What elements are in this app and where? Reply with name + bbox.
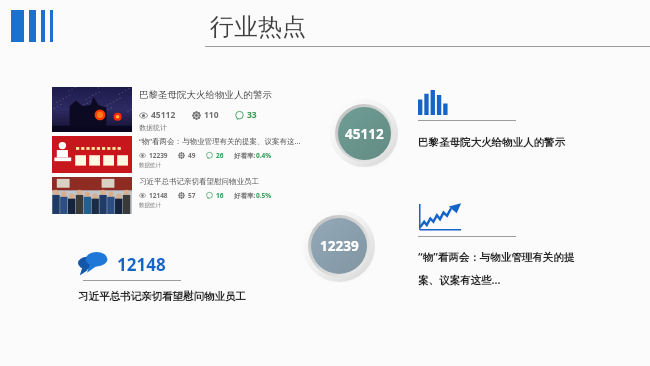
staticText: 0.5% [256,191,272,200]
staticText: 好看率: [234,191,256,200]
staticText: 习近平总书记亲切看望慰问物业员工 [139,177,259,186]
staticText: 110 [204,109,219,121]
staticText: 49 [188,151,196,160]
staticText: 巴黎圣母院大火给物业人的警示 [418,136,565,149]
staticText: “物”看两会：与物业管理有关的提 [418,250,575,264]
button[interactable]: 45112 [330,99,398,167]
staticText: 45112 [151,109,176,121]
staticText: 巴黎圣母院大火给物业人的警示 [139,89,272,101]
staticText: 习近平总书记亲切看望慰问物业员工 [78,290,246,303]
staticText: 数据统计 [139,162,161,169]
button[interactable]: Bar chart [418,90,630,149]
staticText: 0.4% [256,151,272,160]
button[interactable]: Logo [11,10,53,42]
staticText: 案、议案有这些... [418,273,501,287]
staticText: 16 [216,191,224,200]
staticText: 57 [188,191,196,200]
staticText: 12239 [320,237,359,255]
staticText: “物”看两会：与物业管理有关的提案、议案有这… [139,136,301,146]
staticText: 26 [216,151,224,160]
button[interactable]: Trend chart [418,202,634,287]
button[interactable]: 习近平总书记亲切看望慰问物业员工 [52,177,302,214]
staticText: 好看率: [234,151,256,160]
other: Bar chart [418,90,448,115]
button[interactable]: Comments [78,252,313,303]
button[interactable]: “物”看两会：与物业管理有关的提案、议案有这… [52,136,302,173]
other: Comments [78,252,108,276]
staticText: 行业热点 [210,12,306,42]
button[interactable]: 巴黎圣母院大火给物业人的警示 [52,87,302,132]
other: Trend chart [418,202,462,235]
staticText: 数据统计 [139,202,161,209]
staticText: 12148 [149,191,168,200]
staticText: 12148 [117,253,166,276]
staticText: 33 [247,109,257,121]
button[interactable]: 12239 [303,210,375,282]
staticText: 45112 [345,125,384,143]
staticText: 12239 [149,151,168,160]
staticText: 数据统计 [139,123,167,132]
